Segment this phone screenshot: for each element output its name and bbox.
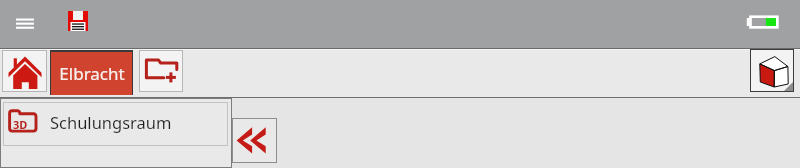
staticText: 3D	[13, 117, 28, 132]
button[interactable]: 3D	[3, 102, 228, 146]
button[interactable]: New project	[139, 50, 183, 92]
button[interactable]: 3D view	[750, 49, 794, 92]
staticText: Elbracht	[59, 62, 125, 85]
button[interactable]: Collapse	[232, 118, 277, 163]
other: Battery	[745, 13, 780, 31]
button[interactable]: Home	[2, 50, 47, 92]
button[interactable]: Save	[64, 7, 92, 35]
button[interactable]: Menu	[9, 9, 41, 39]
button[interactable]: Elbracht	[50, 50, 133, 95]
staticText: Schulungsraum	[50, 111, 172, 133]
